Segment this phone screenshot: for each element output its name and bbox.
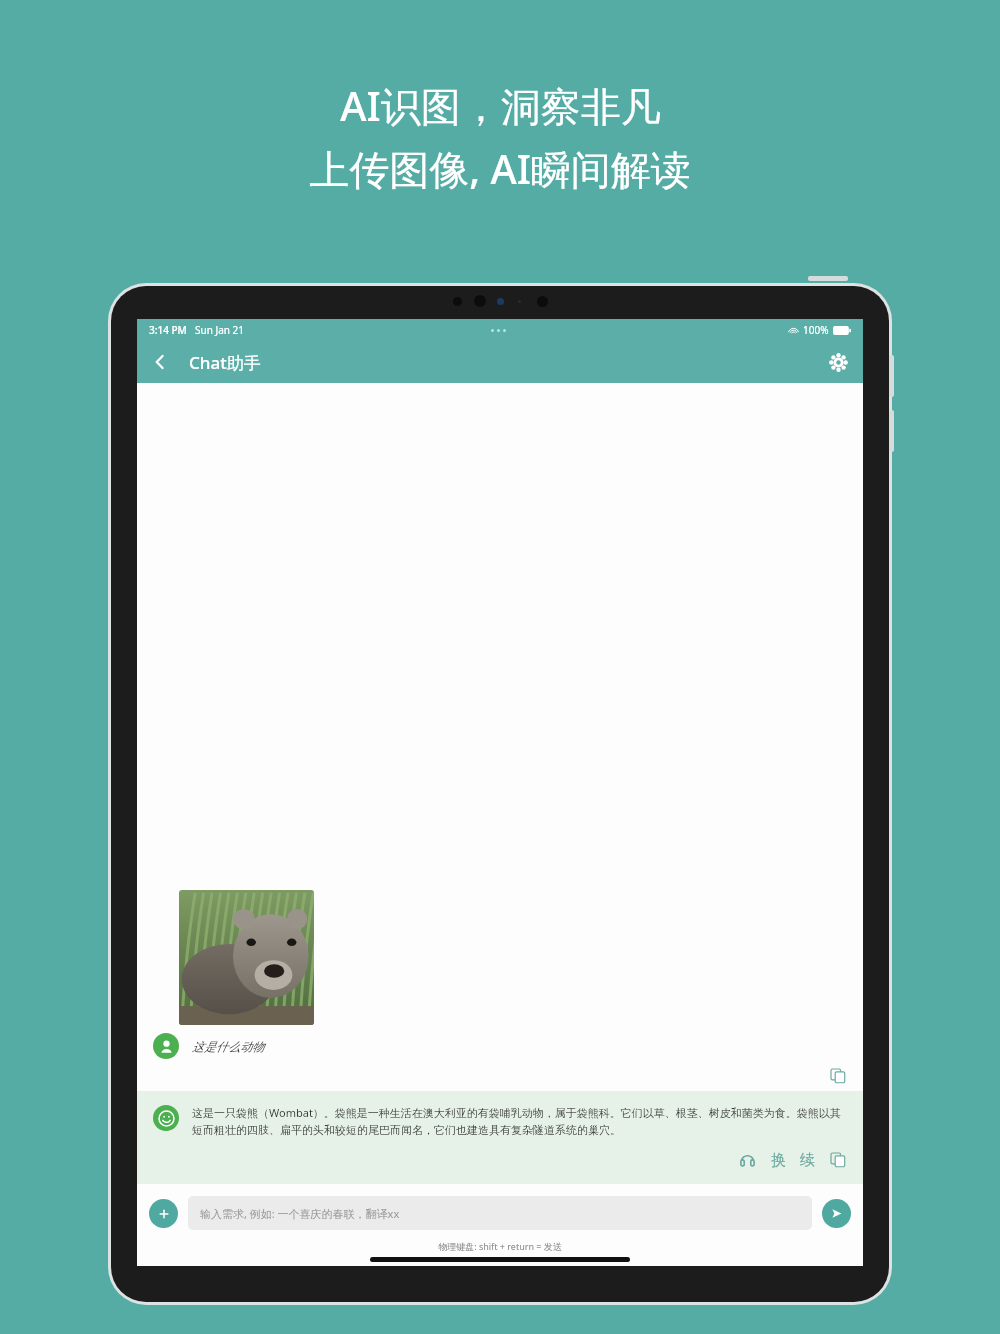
staticText: AI识图，洞察非凡 [340, 78, 661, 133]
staticText: 物理键盘: shift + return = 发送 [137, 1240, 863, 1252]
button[interactable]: Uploaded image of a wombat [179, 890, 314, 1025]
staticText: 这是一只袋熊（Wombat）。袋熊是一种生活在澳大利亚的有袋哺乳动物，属于袋熊科… [192, 1105, 849, 1138]
staticText: Chat助手 [189, 351, 261, 374]
staticText: 这是什么动物 [192, 1039, 264, 1054]
button[interactable]: Send [822, 1199, 851, 1228]
button[interactable]: Settings [821, 345, 855, 379]
staticText: 换 [771, 1151, 786, 1170]
button[interactable]: Add attachment [149, 1199, 178, 1228]
staticText: 3:14 PM [149, 323, 187, 337]
button[interactable]: 换 [769, 1151, 788, 1170]
button[interactable]: 续 [798, 1151, 817, 1170]
button[interactable]: Copy [827, 1149, 849, 1171]
button[interactable]: Back [143, 345, 177, 379]
staticText: 输入需求, 例如: 一个喜庆的春联，翻译xx [200, 1206, 400, 1221]
button[interactable]: 输入需求, 例如: 一个喜庆的春联，翻译xx [188, 1196, 812, 1230]
staticText: Sun Jan 21 [195, 323, 245, 337]
button[interactable]: Copy [827, 1065, 849, 1087]
staticText: 上传图像, AI瞬间解读 [309, 141, 691, 196]
staticText: 100% [803, 323, 829, 337]
staticText: 续 [800, 1151, 815, 1170]
button[interactable]: Read aloud [735, 1148, 759, 1172]
